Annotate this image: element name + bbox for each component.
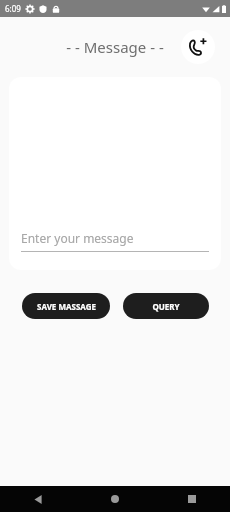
staticText: SAVE MASSAGE: [37, 301, 96, 312]
staticText: - - Message - -: [66, 37, 164, 57]
button[interactable]: Recent apps: [153, 486, 230, 512]
button[interactable]: SAVE MASSAGE: [22, 293, 110, 319]
button[interactable]: Home: [76, 486, 153, 512]
staticText: QUERY: [152, 301, 180, 312]
button[interactable]: Back: [0, 486, 76, 512]
staticText: Enter your message: [21, 230, 134, 246]
button[interactable]: Add call: [181, 30, 215, 64]
button[interactable]: QUERY: [123, 293, 209, 319]
button[interactable]: Enter your message: [21, 228, 209, 248]
staticText: 6:09: [5, 3, 21, 14]
